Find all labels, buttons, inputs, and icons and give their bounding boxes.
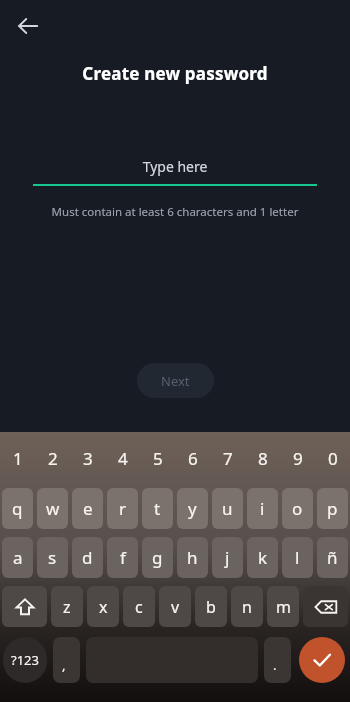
button[interactable]: ñ xyxy=(317,537,348,578)
staticText: w xyxy=(46,497,60,520)
staticText: x xyxy=(99,596,108,618)
button[interactable]: k xyxy=(247,537,278,578)
button[interactable]: 7 xyxy=(210,432,245,484)
button[interactable]: l xyxy=(282,537,313,578)
staticText: n xyxy=(242,596,252,618)
staticText: 6 xyxy=(188,447,198,470)
staticText: k xyxy=(258,546,268,569)
staticText: 4 xyxy=(118,447,128,470)
staticText: y xyxy=(188,497,197,520)
button[interactable]: i xyxy=(247,488,278,529)
button[interactable]: 9 xyxy=(280,432,315,484)
button[interactable]: g xyxy=(142,537,173,578)
button[interactable]: z xyxy=(51,586,83,627)
button[interactable]: j xyxy=(212,537,243,578)
button[interactable]: ?123 xyxy=(3,637,47,683)
button[interactable]: y xyxy=(177,488,208,529)
staticText: c xyxy=(135,596,143,618)
staticText: Type here xyxy=(33,157,317,176)
button[interactable]: , xyxy=(53,637,80,683)
staticText: z xyxy=(63,596,71,618)
staticText: 5 xyxy=(153,447,163,470)
button[interactable]: b xyxy=(195,586,227,627)
staticText: v xyxy=(171,596,180,618)
button[interactable]: u xyxy=(212,488,243,529)
button[interactable]: m xyxy=(267,586,299,627)
staticText: u xyxy=(222,497,233,520)
button[interactable]: d xyxy=(72,537,103,578)
button[interactable]: c xyxy=(123,586,155,627)
staticText: b xyxy=(206,596,216,618)
staticText: h xyxy=(187,546,198,569)
button[interactable]: 0 xyxy=(315,432,350,484)
button[interactable]: 6 xyxy=(175,432,210,484)
staticText: Create new password xyxy=(0,62,350,85)
button[interactable]: s xyxy=(37,537,68,578)
button[interactable]: r xyxy=(107,488,138,529)
button[interactable]: Shift xyxy=(2,586,47,627)
staticText: 8 xyxy=(258,447,268,470)
staticText: Next xyxy=(161,372,190,390)
button[interactable]: Enter xyxy=(299,637,345,683)
button[interactable]: 5 xyxy=(140,432,175,484)
button[interactable]: 1 xyxy=(0,432,35,484)
staticText: 9 xyxy=(293,447,303,470)
staticText: g xyxy=(152,546,163,569)
button[interactable]: o xyxy=(282,488,313,529)
button[interactable]: x xyxy=(87,586,119,627)
button[interactable]: a xyxy=(2,537,33,578)
staticText: , xyxy=(62,656,66,674)
staticText: e xyxy=(83,497,93,520)
button[interactable]: 8 xyxy=(245,432,280,484)
button[interactable]: 2 xyxy=(35,432,70,484)
staticText: . xyxy=(273,656,277,674)
button[interactable]: n xyxy=(231,586,263,627)
button[interactable]: 4 xyxy=(105,432,140,484)
button[interactable]: t xyxy=(142,488,173,529)
button[interactable]: q xyxy=(2,488,33,529)
staticText: ?123 xyxy=(11,651,39,669)
staticText: l xyxy=(295,546,300,569)
staticText: a xyxy=(13,546,23,569)
button[interactable]: . xyxy=(264,637,291,683)
staticText: p xyxy=(327,497,338,520)
button[interactable]: v xyxy=(159,586,191,627)
staticText: 0 xyxy=(328,447,338,470)
staticText: f xyxy=(120,546,126,569)
staticText: 2 xyxy=(48,447,58,470)
staticText: r xyxy=(119,497,127,520)
staticText: t xyxy=(154,497,161,520)
button[interactable]: w xyxy=(37,488,68,529)
staticText: 3 xyxy=(83,447,93,470)
button[interactable]: Back xyxy=(8,6,48,46)
staticText: 7 xyxy=(223,447,233,470)
button[interactable]: f xyxy=(107,537,138,578)
staticText: i xyxy=(260,497,265,520)
button[interactable]: h xyxy=(177,537,208,578)
button[interactable]: p xyxy=(317,488,348,529)
staticText: q xyxy=(12,497,23,520)
button[interactable]: Next xyxy=(137,363,214,398)
staticText: ñ xyxy=(327,546,338,569)
staticText: d xyxy=(82,546,93,569)
button[interactable]: Backspace xyxy=(303,586,348,627)
button[interactable]: Type here xyxy=(33,157,317,186)
staticText: 1 xyxy=(13,447,23,470)
staticText: j xyxy=(225,546,230,569)
staticText: m xyxy=(276,596,291,618)
staticText: o xyxy=(292,497,303,520)
staticText: Must contain at least 6 characters and 1… xyxy=(20,204,330,220)
button[interactable]: e xyxy=(72,488,103,529)
button[interactable]: 3 xyxy=(70,432,105,484)
staticText: s xyxy=(48,546,57,569)
